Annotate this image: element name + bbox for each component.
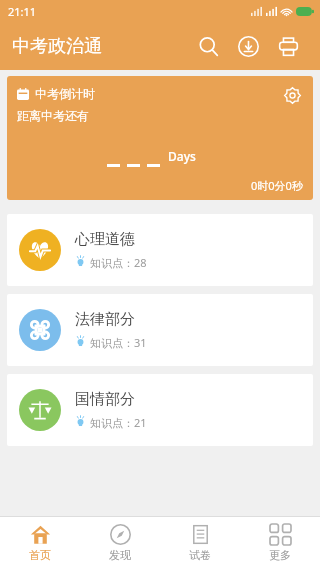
button[interactable]: 心理道德 [7,214,313,286]
staticText: 0时0分0秒 [251,178,303,193]
staticText: 距离中考还有 [17,108,89,123]
button[interactable]: 试卷 [160,517,240,568]
staticText: 法律部分 [75,310,135,329]
staticText: 发现 [109,548,131,562]
button[interactable]: 法律部分 [7,294,313,366]
staticText: 知识点：28 [90,255,147,270]
button[interactable]: Download [228,26,268,66]
button[interactable]: 发现 [80,517,160,568]
button[interactable]: Settings [279,82,305,108]
staticText: 中考政治通 [12,35,102,58]
staticText: 更多 [269,548,291,562]
staticText: 知识点：21 [90,415,147,430]
button[interactable]: 中考倒计时 [7,76,313,200]
staticText: Days [168,148,196,164]
staticText: 试卷 [189,548,211,562]
staticText: 中考倒计时 [35,86,95,101]
staticText: 心理道德 [75,230,135,249]
staticText: 国情部分 [75,390,135,409]
button[interactable]: 更多 [240,517,320,568]
staticText: 首页 [29,548,51,562]
staticText: 知识点：31 [90,335,147,350]
button[interactable]: 国情部分 [7,374,313,446]
button[interactable]: 首页 [0,517,80,568]
button[interactable]: Search [188,26,228,66]
button[interactable]: Print [268,26,308,66]
staticText: 21:11 [8,4,37,19]
